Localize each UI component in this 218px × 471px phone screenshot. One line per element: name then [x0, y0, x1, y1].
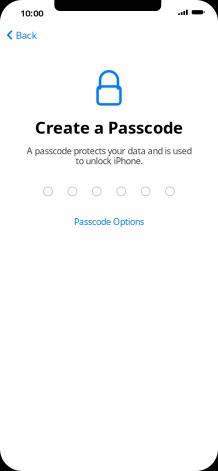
staticText: 10:00 [20, 6, 43, 19]
button[interactable]: Back [0, 26, 45, 44]
staticText: Create a Passcode [35, 116, 183, 139]
staticText: Back [16, 28, 37, 42]
staticText: A passcode protects your data and is use… [26, 145, 191, 167]
button[interactable]: Passcode Options [64, 211, 154, 232]
staticText: Passcode Options [74, 215, 144, 228]
